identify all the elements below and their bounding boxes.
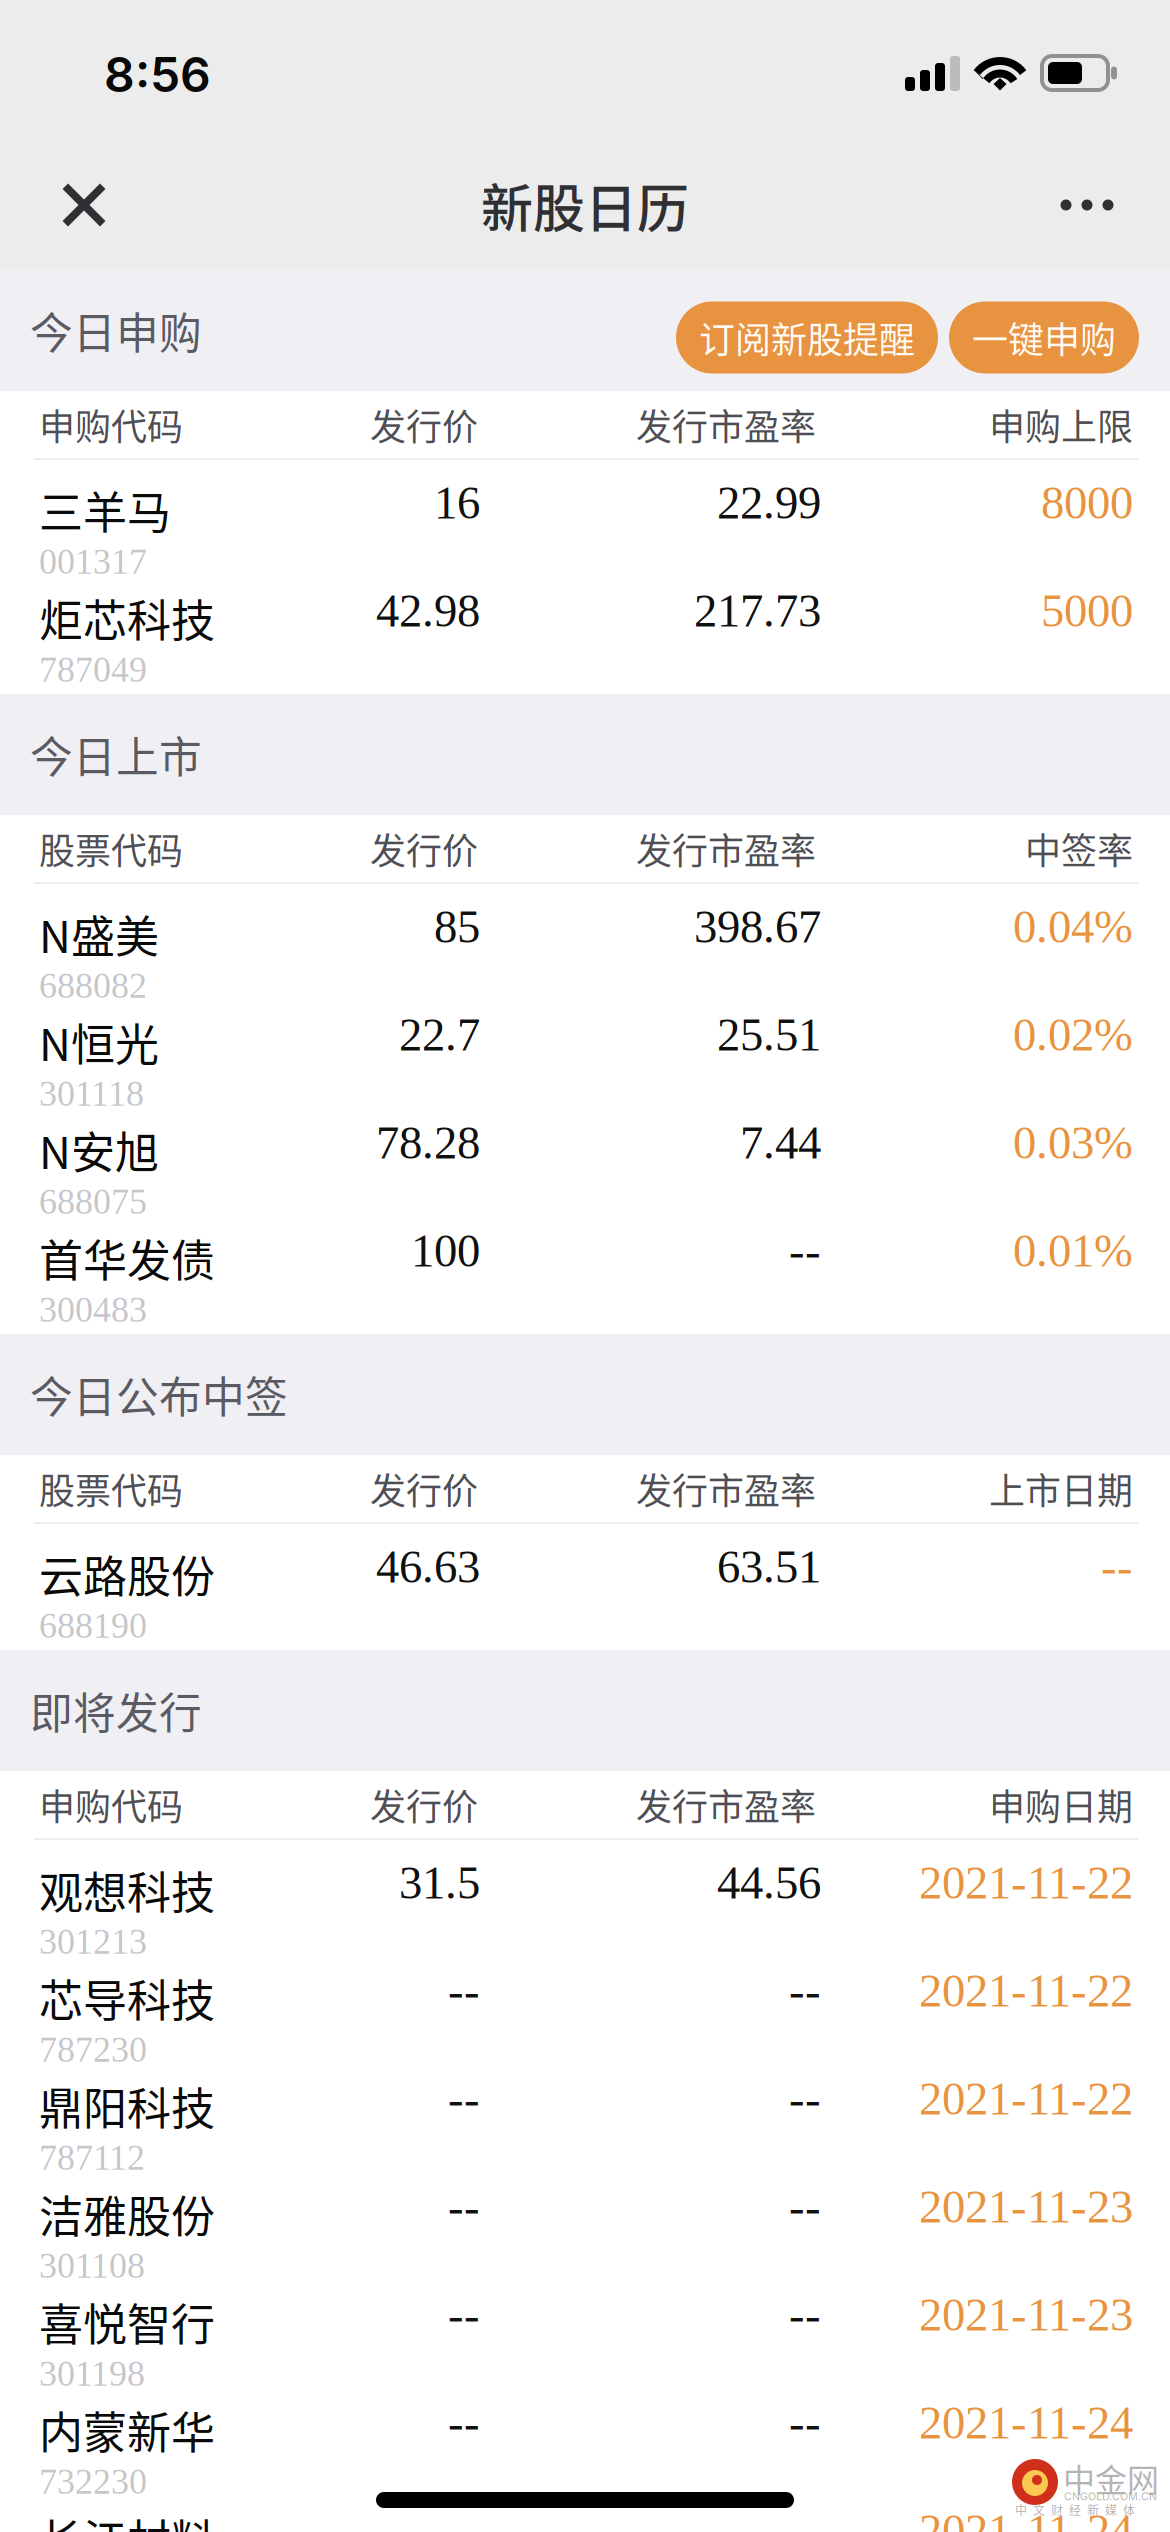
staticText: 2021-11-24 [919, 2397, 1133, 2449]
staticText: -- [789, 1965, 821, 2017]
staticText: -- [448, 2181, 480, 2233]
staticText: 25.51 [717, 1009, 821, 1061]
button[interactable]: 长江材料 [0, 2488, 1170, 2532]
staticText: 申购代码 [39, 398, 183, 450]
staticText: 787230 [39, 2030, 147, 2070]
staticText: 2021-11-23 [919, 2289, 1133, 2341]
staticText: 今日上市 [30, 724, 202, 785]
staticText: 首华发债 [39, 1226, 215, 1290]
button[interactable]: 一键申购 [949, 294, 1139, 366]
staticText: 今日公布中签 [30, 1364, 288, 1425]
staticText: 发行市盈率 [636, 398, 816, 450]
staticText: 订阅新股提醒 [699, 311, 915, 363]
staticText: 0.02% [1013, 1009, 1133, 1061]
button[interactable]: 更多 [1044, 162, 1130, 248]
staticText: 2021-11-23 [919, 2181, 1133, 2233]
staticText: 观想科技 [39, 1858, 215, 1922]
staticText: 688082 [39, 966, 147, 1006]
staticText: 发行市盈率 [636, 822, 816, 874]
staticText: 0.03% [1013, 1117, 1133, 1169]
staticText: 100 [411, 1225, 480, 1277]
staticText: 44.56 [717, 1857, 821, 1909]
staticText: -- [789, 2181, 821, 2233]
staticText: 217.73 [694, 585, 821, 637]
staticText: 炬芯科技 [39, 586, 215, 650]
button[interactable]: 关闭 [41, 162, 127, 248]
staticText: 即将发行 [30, 1680, 202, 1741]
staticText: 发行市盈率 [636, 1462, 816, 1514]
staticText: 云路股份 [39, 1542, 215, 1606]
button[interactable]: 内蒙新华 [0, 2380, 1170, 2488]
staticText: 85 [434, 901, 480, 953]
staticText: 一键申购 [972, 311, 1116, 363]
button[interactable]: 首华发债 [0, 1208, 1170, 1334]
staticText: 16 [434, 477, 480, 529]
button[interactable]: 三羊马 [0, 460, 1170, 568]
staticText: 301118 [39, 1074, 144, 1114]
staticText: 申购上限 [989, 398, 1133, 450]
staticText: 今日申购 [30, 300, 202, 361]
button[interactable]: 洁雅股份 [0, 2164, 1170, 2272]
staticText: N安旭 [39, 1118, 159, 1182]
staticText: N盛美 [39, 902, 159, 966]
staticText: 42.98 [376, 585, 480, 637]
staticText: -- [448, 1965, 480, 2017]
button[interactable]: 订阅新股提醒 [676, 294, 938, 366]
staticText: 78.28 [376, 1117, 480, 1169]
button[interactable]: N盛美 [0, 884, 1170, 992]
button[interactable]: 炬芯科技 [0, 568, 1170, 694]
staticText: 301198 [39, 2354, 145, 2394]
staticText: 398.67 [694, 901, 821, 953]
staticText: N恒光 [39, 1010, 159, 1074]
staticText: 63.51 [717, 1541, 821, 1593]
staticText: 中 文 财 经 新 媒 体 [1015, 2501, 1135, 2518]
button[interactable]: 云路股份 [0, 1524, 1170, 1650]
staticText: -- [789, 1225, 821, 1277]
staticText: 芯导科技 [39, 1966, 215, 2030]
staticText: 中金网 [1063, 2455, 1159, 2501]
staticText: 发行价 [370, 1778, 478, 1830]
staticText: 股票代码 [39, 822, 183, 874]
staticText: 787049 [39, 650, 147, 690]
staticText: 7.44 [740, 1117, 821, 1169]
staticText: -- [448, 2505, 480, 2532]
staticText: -- [789, 2289, 821, 2341]
staticText: 301108 [39, 2246, 145, 2286]
staticText: -- [448, 2289, 480, 2341]
button[interactable]: N安旭 [0, 1100, 1170, 1208]
staticText: 上市日期 [989, 1462, 1133, 1514]
staticText: 300483 [39, 1290, 147, 1330]
staticText: 22.7 [399, 1009, 480, 1061]
staticText: 787112 [39, 2138, 145, 2178]
button[interactable]: 观想科技 [0, 1840, 1170, 1948]
staticText: 8:56 [104, 45, 211, 104]
staticText: 三羊马 [39, 478, 171, 542]
staticText: -- [789, 2397, 821, 2449]
staticText: -- [448, 2397, 480, 2449]
button[interactable]: 喜悦智行 [0, 2272, 1170, 2380]
staticText: 申购日期 [989, 1778, 1133, 1830]
staticText: 732230 [39, 2462, 147, 2502]
staticText: -- [789, 2073, 821, 2125]
staticText: 31.5 [399, 1857, 480, 1909]
staticText: 301213 [39, 1922, 147, 1962]
button[interactable]: N恒光 [0, 992, 1170, 1100]
staticText: 洁雅股份 [39, 2182, 215, 2246]
staticText: 688190 [39, 1606, 147, 1646]
staticText: 股票代码 [39, 1462, 183, 1514]
staticText: 001317 [39, 542, 147, 582]
staticText: 鼎阳科技 [39, 2074, 215, 2138]
staticText: -- [1101, 1541, 1133, 1593]
staticText: 发行价 [370, 1462, 478, 1514]
staticText: 2021-11-22 [919, 1965, 1133, 2017]
staticText: -- [448, 2073, 480, 2125]
button[interactable]: 芯导科技 [0, 1948, 1170, 2056]
staticText: 发行市盈率 [636, 1778, 816, 1830]
staticText: 新股日历 [481, 167, 689, 243]
staticText: 发行价 [370, 398, 478, 450]
staticText: 0.01% [1013, 1225, 1133, 1277]
staticText: 喜悦智行 [39, 2290, 215, 2354]
button[interactable]: 鼎阳科技 [0, 2056, 1170, 2164]
staticText: 内蒙新华 [39, 2398, 215, 2462]
staticText: 0.04% [1013, 901, 1133, 953]
